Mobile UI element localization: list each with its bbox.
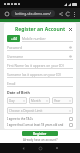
staticText: Year (54, 99, 69, 103)
staticText: betting-site-demo.com/register (14, 12, 52, 16)
button[interactable]: Email (7, 80, 73, 87)
button[interactable]: More options (71, 11, 77, 17)
button[interactable]: I agree that I am at least 18 years old … (7, 123, 73, 127)
button[interactable]: Surname (as it appears on your ID) (7, 71, 73, 78)
button[interactable]: Password (7, 44, 73, 51)
staticText: Surname (as it appears on your ID) (7, 72, 73, 76)
staticText: Mobile number (22, 36, 73, 40)
button[interactable]: Country code (7, 35, 20, 42)
button[interactable]: Share (57, 10, 64, 17)
button[interactable]: Show password (68, 45, 73, 50)
staticText: Password (7, 45, 68, 49)
staticText: First Name (as it appears on your ID) (7, 63, 73, 67)
button[interactable]: Register (22, 131, 58, 136)
button[interactable]: Recent apps (55, 146, 59, 150)
button[interactable]: Choose a Deposit Limit (7, 107, 73, 114)
button[interactable]: Home (38, 146, 42, 150)
staticText: Date of Birth (7, 90, 30, 95)
button[interactable]: Back (21, 146, 25, 150)
staticText: Day (9, 99, 23, 103)
button[interactable]: Month (29, 97, 50, 104)
button[interactable]: Already have an account? (23, 138, 58, 142)
staticText: Username (7, 54, 68, 58)
button[interactable]: Username (7, 53, 73, 60)
staticText: Register an Account (15, 26, 66, 33)
staticText: I agree to the T&Cs (7, 117, 67, 121)
button[interactable]: Refresh (64, 10, 71, 17)
button[interactable]: Site settings (3, 10, 10, 17)
staticText: Already have an account? (23, 138, 58, 142)
button[interactable]: Close (68, 27, 73, 32)
staticText: Email (7, 81, 73, 85)
button[interactable]: Day (7, 97, 27, 104)
button[interactable]: betting-site-demo.com/register (11, 10, 55, 17)
button[interactable]: I agree to the T&Cs (7, 117, 73, 121)
staticText: +44 (11, 36, 17, 41)
button[interactable]: First Name (as it appears on your ID) (7, 62, 73, 69)
button[interactable]: Mobile number (22, 35, 73, 42)
staticText: Month (31, 99, 46, 103)
staticText: Register (33, 132, 47, 136)
button[interactable]: Year (52, 97, 73, 104)
button[interactable]: Show username hint (68, 54, 73, 59)
staticText: I agree that I am at least 18 years old … (7, 123, 67, 127)
staticText: Choose a Deposit Limit (9, 109, 69, 113)
